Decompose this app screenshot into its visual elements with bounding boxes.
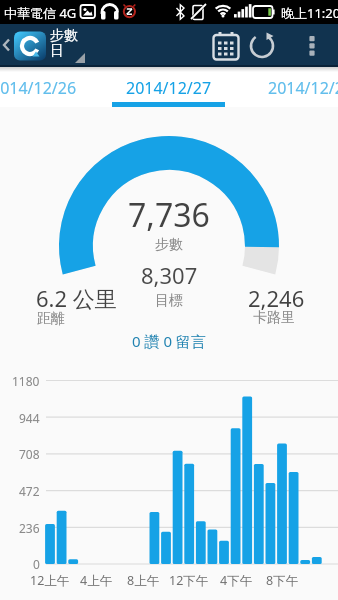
staticText: 2014/12/27: [126, 77, 212, 99]
staticText: 6.2 公里: [36, 283, 117, 313]
button[interactable]: [237, 24, 287, 67]
staticText: 12上午: [30, 572, 70, 589]
staticText: 步數: [50, 27, 78, 45]
staticText: 卡路里: [253, 309, 295, 327]
staticText: 中華電信 4G: [4, 4, 77, 22]
staticText: 日: [50, 42, 64, 60]
button[interactable]: 2014/12/2: [0, 67, 76, 89]
staticText: 472: [19, 483, 40, 499]
staticText: 距離: [37, 310, 65, 328]
staticText: 0 讚 0 留言: [132, 331, 206, 351]
staticText: 7,736: [128, 193, 210, 237]
button[interactable]: 0 讚 0 留言: [118, 330, 220, 352]
staticText: 8上午: [127, 572, 160, 589]
button[interactable]: [201, 24, 251, 67]
button[interactable]: [0, 24, 100, 67]
staticText: 4下午: [220, 572, 253, 589]
staticText: 目標: [155, 292, 183, 310]
button[interactable]: [292, 24, 331, 67]
staticText: 4上午: [80, 572, 113, 589]
staticText: 2,246: [248, 283, 305, 313]
staticText: 0: [33, 556, 40, 572]
staticText: 12下午: [169, 572, 209, 589]
staticText: 8下午: [266, 572, 299, 589]
staticText: 236: [19, 520, 40, 536]
staticText: 8,307: [141, 260, 198, 290]
staticText: 1180: [12, 373, 40, 389]
button[interactable]: 2014/12/26: [0, 67, 86, 89]
staticText: 晚上11:20: [281, 4, 338, 22]
staticText: 944: [19, 410, 40, 426]
staticText: 步數: [155, 236, 183, 254]
staticText: 708: [19, 446, 40, 462]
button[interactable]: 2014/12/27: [112, 67, 225, 107]
